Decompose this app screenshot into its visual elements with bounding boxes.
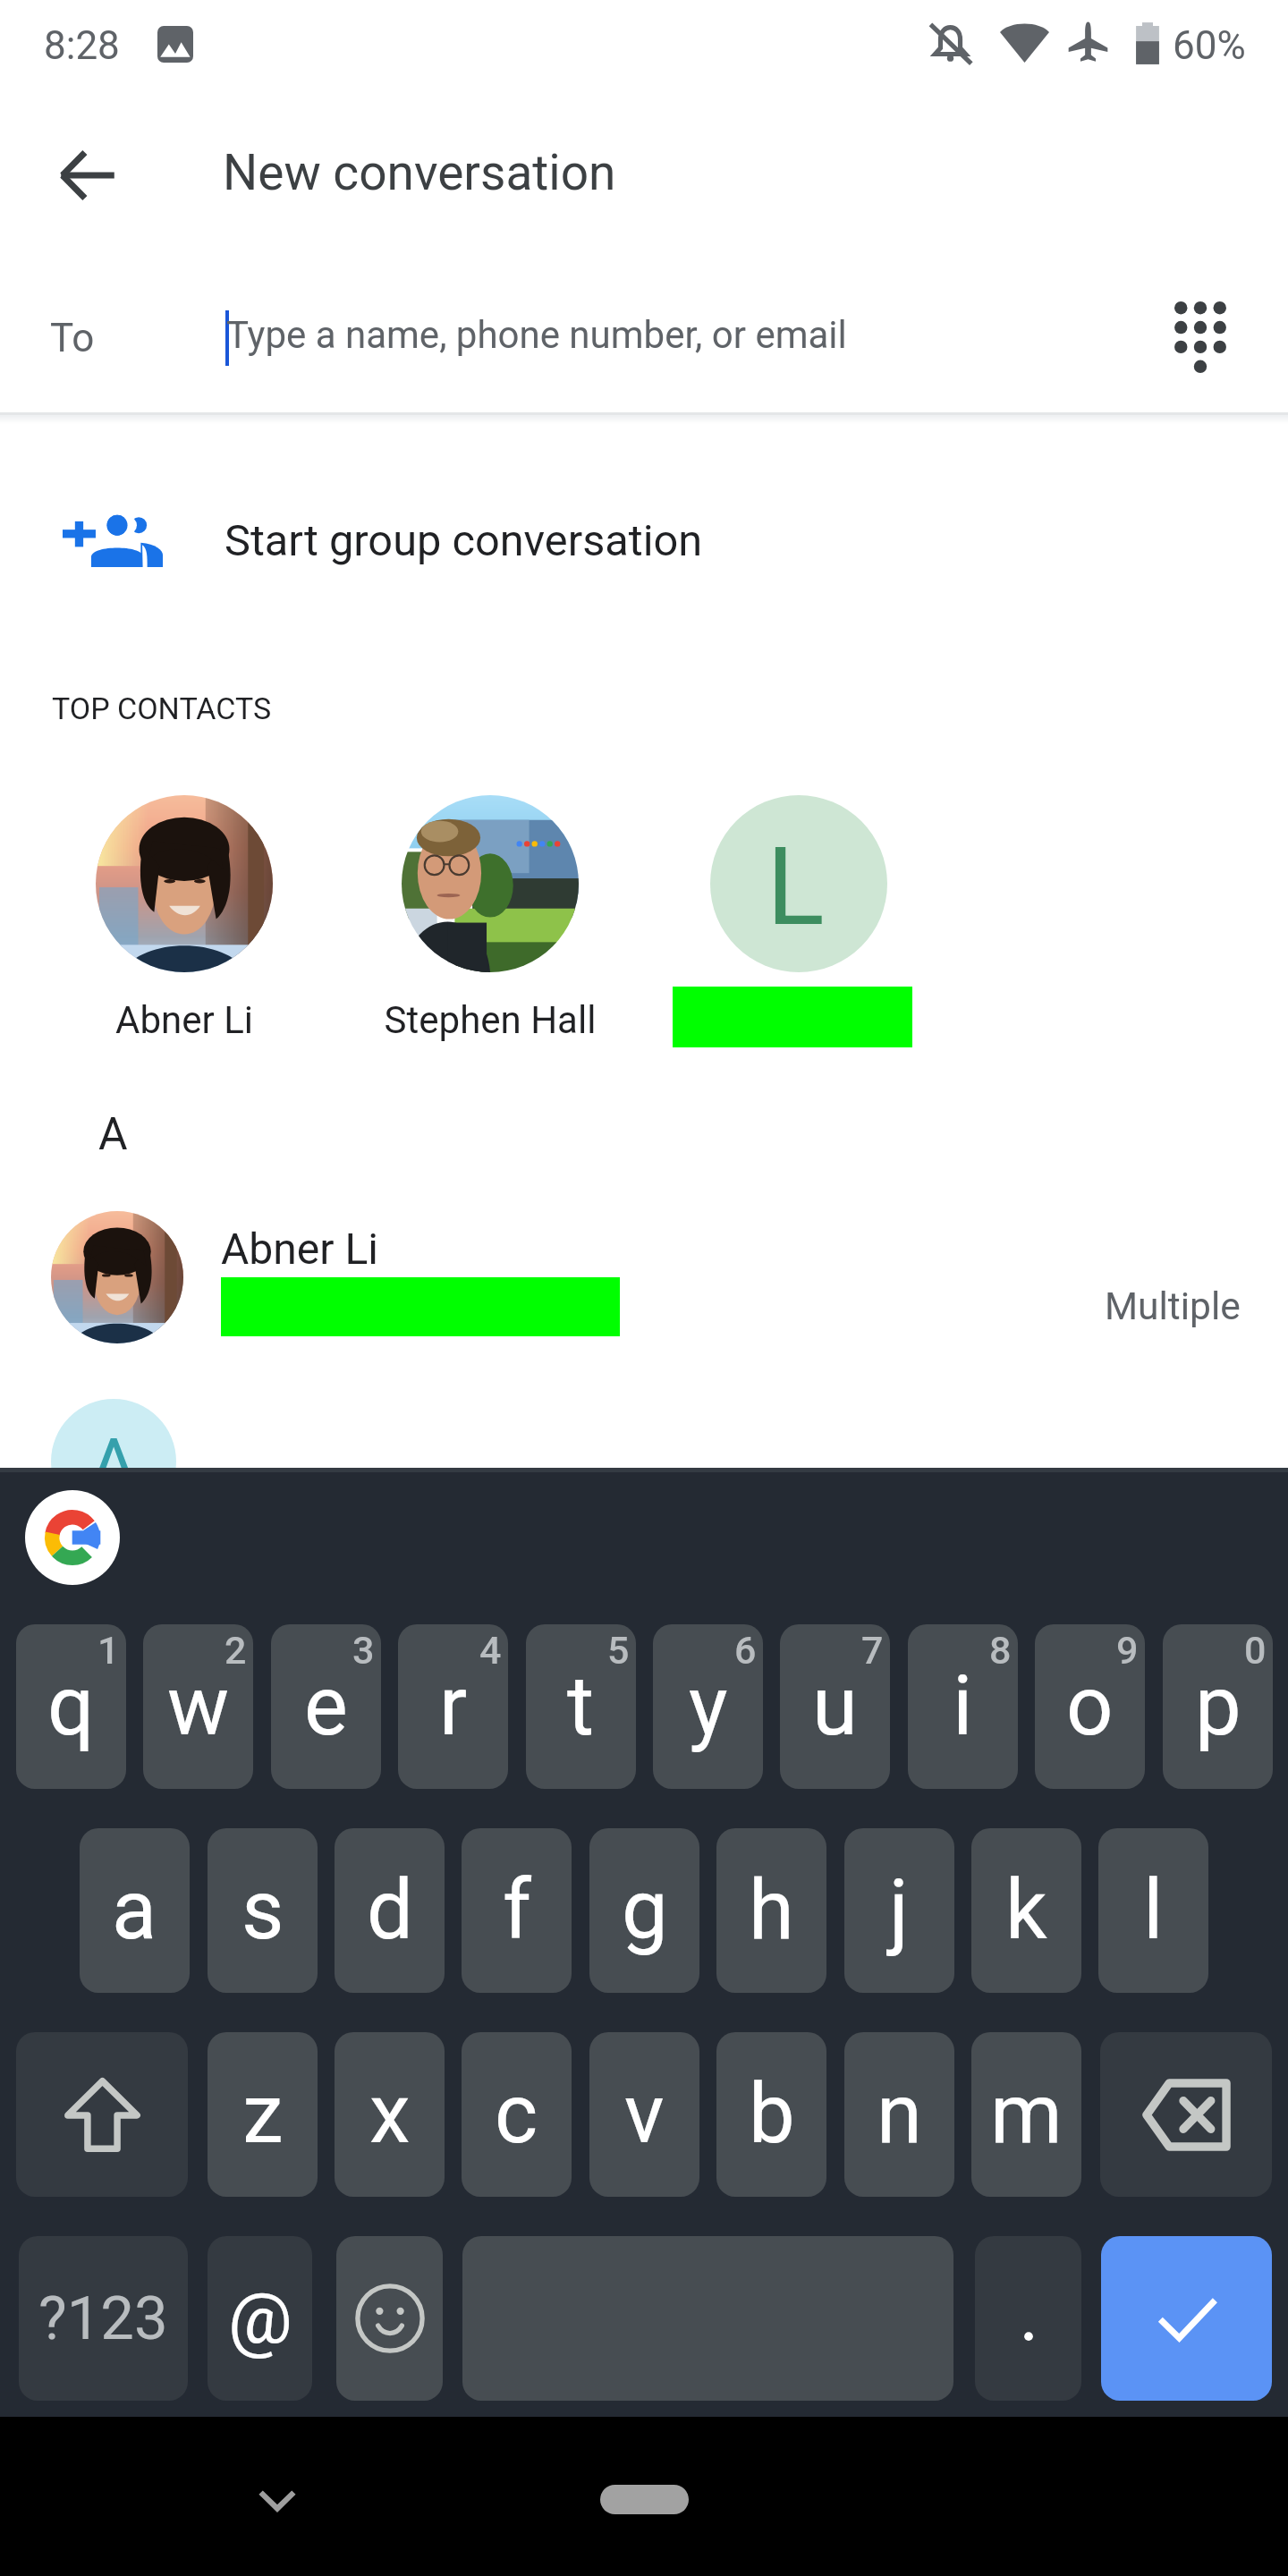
staticText: a bbox=[112, 1862, 157, 1959]
button[interactable]: o bbox=[1035, 1624, 1145, 1789]
staticText: d bbox=[367, 1862, 413, 1959]
staticText: k bbox=[1005, 1862, 1047, 1959]
staticText: Abner Li bbox=[221, 1224, 378, 1274]
button[interactable]: e bbox=[271, 1624, 381, 1789]
staticText: TOP CONTACTS bbox=[52, 691, 272, 726]
staticText: l bbox=[1143, 1862, 1164, 1959]
staticText: 0 bbox=[1244, 1628, 1267, 1673]
staticText: Multiple bbox=[1105, 1284, 1241, 1329]
staticText: 7 bbox=[861, 1628, 884, 1673]
staticText: 60% bbox=[1173, 22, 1246, 69]
button[interactable]: w bbox=[143, 1624, 253, 1789]
button[interactable]: f bbox=[462, 1828, 572, 1993]
staticText: 3 bbox=[352, 1628, 375, 1673]
staticText: L bbox=[767, 825, 825, 951]
staticText: q bbox=[47, 1658, 95, 1755]
button[interactable]: Period bbox=[975, 2236, 1081, 2401]
button[interactable]: k bbox=[971, 1828, 1081, 1993]
staticText: w bbox=[167, 1658, 230, 1755]
staticText: b bbox=[749, 2066, 795, 2163]
button[interactable]: Start group conversation bbox=[0, 447, 1288, 617]
button[interactable]: g bbox=[589, 1828, 699, 1993]
button[interactable]: a bbox=[80, 1828, 190, 1993]
button[interactable]: u bbox=[780, 1624, 890, 1789]
staticText: m bbox=[990, 2066, 1063, 2163]
button[interactable]: ?123 bbox=[19, 2236, 188, 2401]
button[interactable]: s bbox=[208, 1828, 318, 1993]
button[interactable]: d bbox=[335, 1828, 445, 1993]
staticText: 6 bbox=[734, 1628, 757, 1673]
button[interactable]: l bbox=[1098, 1828, 1208, 1993]
button[interactable]: Enter bbox=[1101, 2236, 1272, 2401]
button[interactable]: Backspace bbox=[1100, 2032, 1272, 2197]
button[interactable]: y bbox=[653, 1624, 763, 1789]
staticText: To bbox=[50, 315, 95, 361]
button[interactable]: z bbox=[208, 2032, 318, 2197]
staticText: Abner Li bbox=[23, 998, 345, 1042]
staticText: A bbox=[90, 1423, 138, 1507]
button[interactable]: j bbox=[844, 1828, 954, 1993]
staticText: t bbox=[567, 1658, 595, 1755]
button[interactable]: q bbox=[16, 1624, 126, 1789]
staticText: c bbox=[495, 2066, 538, 2163]
staticText: e bbox=[304, 1658, 348, 1755]
button[interactable]: h bbox=[716, 1828, 826, 1993]
staticText: z bbox=[242, 2066, 284, 2163]
button[interactable]: Shift bbox=[16, 2032, 188, 2197]
staticText: 2 bbox=[225, 1628, 247, 1673]
staticText: i bbox=[953, 1658, 973, 1755]
button[interactable]: Google voice typing bbox=[25, 1490, 120, 1585]
staticText: 5 bbox=[607, 1628, 630, 1673]
button[interactable]: Hide keyboard bbox=[231, 2453, 324, 2546]
button[interactable]: Emoji bbox=[336, 2236, 443, 2401]
button[interactable]: b bbox=[716, 2032, 826, 2197]
button[interactable]: p bbox=[1163, 1624, 1273, 1789]
staticText: r bbox=[439, 1658, 468, 1755]
staticText: 8 bbox=[989, 1628, 1012, 1673]
staticText: j bbox=[889, 1862, 910, 1959]
staticText: y bbox=[689, 1658, 728, 1755]
staticText: v bbox=[624, 2066, 665, 2163]
button[interactable]: c bbox=[462, 2032, 572, 2197]
staticText: x bbox=[369, 2066, 411, 2163]
staticText: f bbox=[503, 1862, 531, 1959]
staticText: p bbox=[1195, 1658, 1241, 1755]
button[interactable]: @ bbox=[208, 2236, 312, 2401]
button[interactable]: Dialpad bbox=[1141, 278, 1259, 396]
button[interactable]: v bbox=[589, 2032, 699, 2197]
button[interactable]: i bbox=[908, 1624, 1018, 1789]
staticText: h bbox=[749, 1862, 794, 1959]
button[interactable]: Stephen Hall bbox=[402, 795, 579, 972]
button[interactable]: x bbox=[335, 2032, 445, 2197]
staticText: g bbox=[622, 1862, 668, 1959]
staticText: u bbox=[812, 1658, 858, 1755]
button[interactable]: n bbox=[844, 2032, 954, 2197]
staticText: 4 bbox=[479, 1628, 502, 1673]
staticText: 9 bbox=[1116, 1628, 1139, 1673]
staticText: ?123 bbox=[38, 2284, 168, 2354]
button[interactable]: Contact L bbox=[710, 795, 887, 972]
staticText: 1 bbox=[97, 1628, 120, 1673]
button[interactable]: r bbox=[398, 1624, 508, 1789]
staticText: @ bbox=[228, 2276, 292, 2360]
button[interactable]: Abner Li bbox=[0, 1190, 1288, 1368]
button[interactable]: Abner Li bbox=[96, 795, 273, 972]
staticText: Start group conversation bbox=[225, 515, 703, 566]
staticText: n bbox=[877, 2066, 922, 2163]
staticText: s bbox=[241, 1862, 284, 1959]
staticText: Stephen Hall bbox=[329, 998, 651, 1042]
staticText: 8:28 bbox=[44, 22, 120, 69]
button[interactable]: m bbox=[971, 2032, 1081, 2197]
staticText: o bbox=[1066, 1658, 1114, 1755]
staticText: New conversation bbox=[223, 144, 616, 201]
staticText: A bbox=[98, 1108, 128, 1161]
button[interactable]: Space bbox=[462, 2236, 953, 2401]
button[interactable]: Back bbox=[38, 125, 138, 225]
button[interactable]: Home bbox=[600, 2485, 689, 2514]
button[interactable]: t bbox=[526, 1624, 636, 1789]
staticText: Type a name, phone number, or email bbox=[226, 313, 847, 357]
